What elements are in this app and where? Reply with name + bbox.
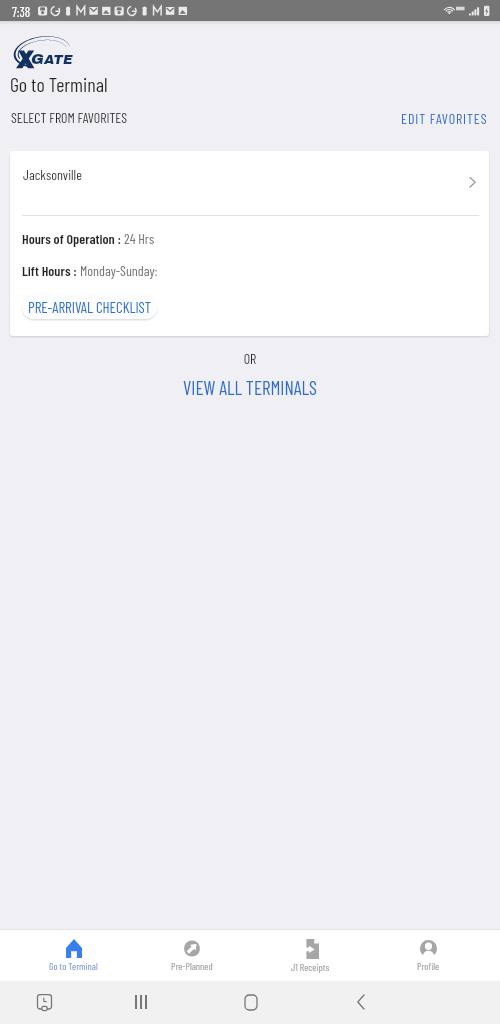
staticText: Monday-Sunday: [80,262,158,279]
staticText: Go to Terminal [49,960,98,972]
staticText: Lift Hours : [22,262,80,279]
staticText: G [31,51,44,68]
button[interactable]: Home [240,990,262,1014]
button[interactable]: Screenshot [37,990,52,1014]
button[interactable]: VIEW ALL TERMINALS [175,371,325,404]
button[interactable]: Go to Terminal [14,930,133,981]
button[interactable]: Jacksonville [10,151,489,215]
staticText: EDIT FAVORITES [401,110,488,127]
button[interactable]: Pre-Planned [133,930,251,981]
staticText: Pre-Planned [171,960,213,972]
staticText: VIEW ALL TERMINALS [183,376,317,399]
staticText: PRE-ARRIVAL CHECKLIST [28,298,151,316]
staticText: Go to Terminal [10,72,108,96]
button[interactable]: Profile [369,930,487,981]
button[interactable]: Recent apps [130,990,152,1014]
staticText: Hours of Operation : [22,230,124,247]
staticText: SELECT FROM FAVORITES [11,109,128,126]
staticText: Jacksonville [23,166,82,183]
button[interactable]: EDIT FAVORITES [395,106,493,131]
button[interactable]: Back [350,990,371,1014]
staticText: OR [0,350,500,367]
button[interactable]: J1 Receipts [251,930,369,981]
staticText: Profile [417,960,440,972]
staticText: J1 Receipts [291,961,330,973]
staticText: 7:38 [12,4,31,20]
staticText: 24 Hrs [124,230,155,247]
button[interactable]: PRE-ARRIVAL CHECKLIST [21,294,158,319]
staticText: ATE [44,52,73,66]
